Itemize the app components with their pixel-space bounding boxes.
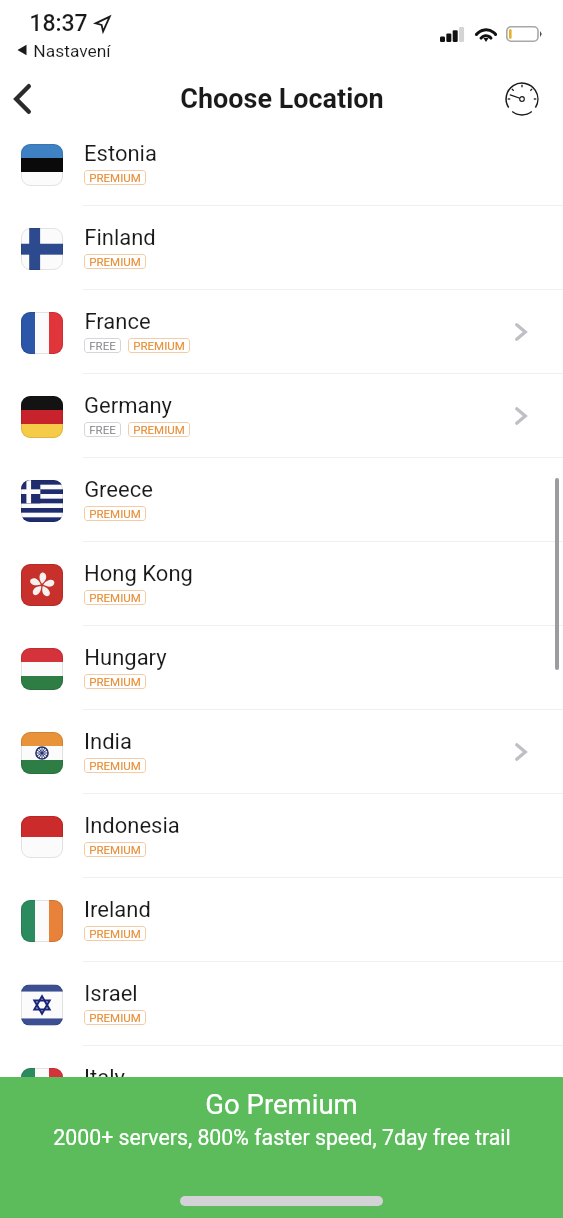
staticText: Hong Kong xyxy=(84,561,193,587)
staticText: PREMIUM xyxy=(89,927,141,940)
staticText: France xyxy=(84,309,151,335)
staticText: Choose Location xyxy=(180,83,384,115)
button[interactable]: Speed test xyxy=(499,68,563,122)
staticText: PREMIUM xyxy=(89,843,141,856)
staticText: FREE xyxy=(89,339,116,352)
button[interactable]: India xyxy=(0,710,563,794)
staticText: Finland xyxy=(84,225,156,251)
staticText: Estonia xyxy=(84,141,157,167)
staticText: Nastavení xyxy=(33,41,111,61)
button[interactable]: Israel xyxy=(0,962,563,1046)
button[interactable]: Ireland xyxy=(0,878,563,962)
button[interactable]: Back xyxy=(0,68,58,122)
staticText: Greece xyxy=(84,477,153,503)
staticText: PREMIUM xyxy=(89,1011,141,1024)
button[interactable]: Hungary xyxy=(0,626,563,710)
staticText: Hungary xyxy=(84,645,167,671)
staticText: Indonesia xyxy=(84,813,180,839)
button[interactable]: Italy xyxy=(0,1046,563,1077)
button[interactable]: Estonia xyxy=(0,122,563,206)
staticText: PREMIUM xyxy=(89,759,141,772)
staticText: FREE xyxy=(89,423,116,436)
staticText: 18:37 xyxy=(29,10,88,37)
staticText: Israel xyxy=(84,981,138,1007)
button[interactable]: Finland xyxy=(0,206,563,290)
staticText: Ireland xyxy=(84,897,151,923)
staticText: PREMIUM xyxy=(89,255,141,268)
button[interactable]: Greece xyxy=(0,458,563,542)
staticText: 2000+ servers, 800% faster speed, 7day f… xyxy=(53,1125,511,1150)
staticText: Go Premium xyxy=(205,1088,358,1120)
staticText: PREMIUM xyxy=(89,591,141,604)
staticText: PREMIUM xyxy=(133,339,185,352)
button[interactable]: Hong Kong xyxy=(0,542,563,626)
staticText: India xyxy=(84,729,132,755)
staticText: PREMIUM xyxy=(89,507,141,520)
staticText: PREMIUM xyxy=(89,171,141,184)
staticText: PREMIUM xyxy=(133,423,185,436)
button[interactable]: France xyxy=(0,290,563,374)
staticText: Germany xyxy=(84,393,172,419)
staticText: PREMIUM xyxy=(89,675,141,688)
button[interactable]: Indonesia xyxy=(0,794,563,878)
button[interactable]: Germany xyxy=(0,374,563,458)
staticText: Italy xyxy=(84,1065,125,1077)
